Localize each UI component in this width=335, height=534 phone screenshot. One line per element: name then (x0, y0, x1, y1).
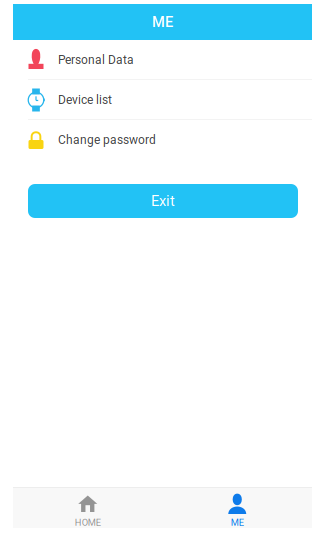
staticText: ME (231, 517, 244, 528)
staticText: Exit (151, 192, 175, 210)
button[interactable]: Exit (28, 184, 298, 218)
button[interactable]: HOME (13, 487, 162, 527)
staticText: Device list (58, 93, 112, 107)
staticText: ME (152, 13, 173, 31)
staticText: Personal Data (58, 53, 134, 67)
button[interactable]: Personal Data (13, 40, 312, 80)
button[interactable]: Change password (13, 120, 312, 160)
button[interactable]: ME (162, 487, 312, 527)
staticText: Change password (58, 133, 156, 147)
button[interactable]: Device list (13, 80, 312, 120)
staticText: HOME (75, 517, 101, 528)
